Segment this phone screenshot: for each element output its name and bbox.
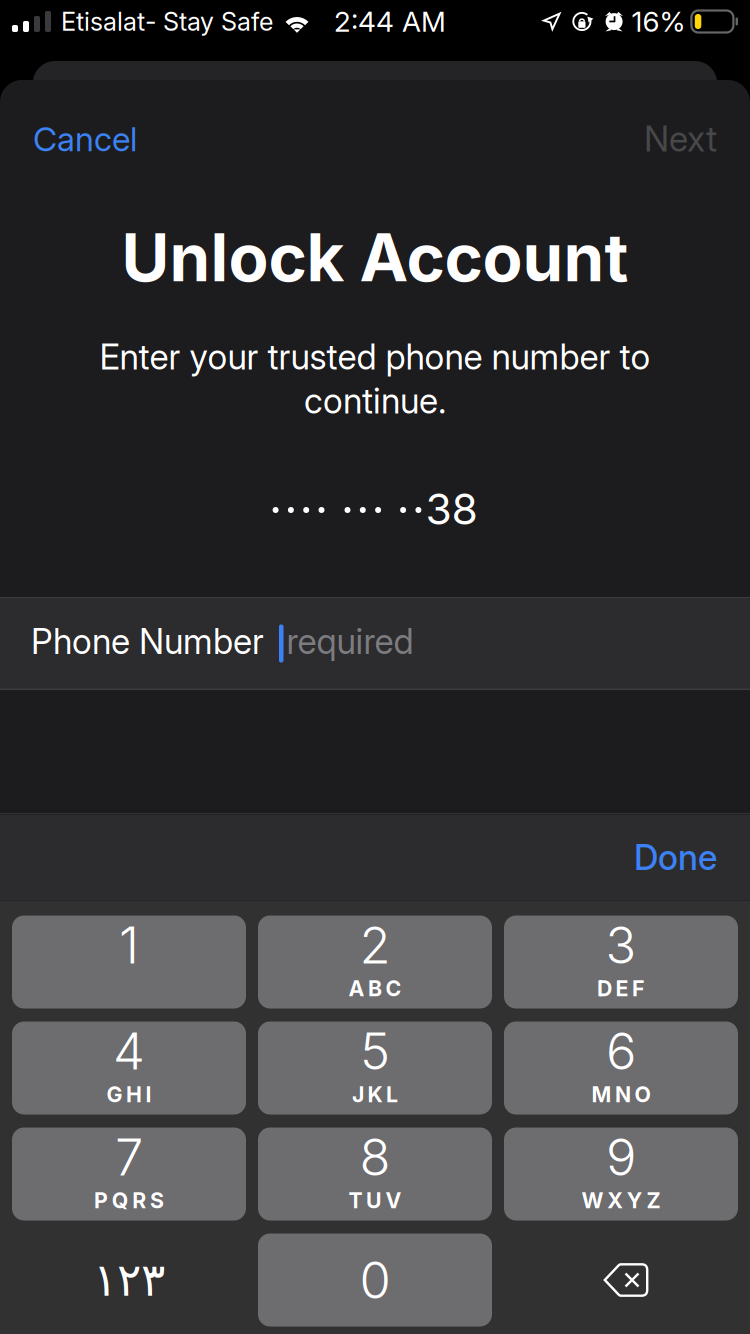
button[interactable]: 5 [258, 1021, 492, 1114]
staticText: 0 [359, 1249, 390, 1311]
staticText: 1 [119, 914, 139, 976]
staticText: GHI [106, 1081, 152, 1107]
button[interactable]: Delete [504, 1233, 738, 1326]
staticText: 2 [359, 914, 390, 976]
staticText: WXYZ [582, 1187, 660, 1213]
button[interactable]: 7 [12, 1127, 246, 1220]
staticText: PQRS [94, 1187, 164, 1213]
staticText: DEF [597, 975, 645, 1001]
button[interactable]: Done [634, 836, 717, 878]
staticText: 8 [359, 1126, 390, 1188]
button[interactable]: 9 [504, 1127, 738, 1220]
button[interactable]: Next [597, 104, 717, 174]
staticText: continue. [304, 380, 446, 422]
button[interactable]: 3 [504, 915, 738, 1008]
staticText: JKL [352, 1081, 398, 1107]
staticText: MNO [591, 1081, 651, 1107]
staticText: 16% [631, 5, 685, 38]
staticText: ABC [348, 975, 402, 1001]
staticText: Enter your trusted phone number to [99, 336, 650, 378]
button[interactable]: 2 [258, 915, 492, 1008]
button[interactable]: Switch to Arabic numerals [12, 1233, 246, 1326]
button[interactable]: 0 [258, 1233, 492, 1326]
button[interactable]: 8 [258, 1127, 492, 1220]
staticText: 6 [606, 1020, 636, 1082]
staticText: 3 [605, 914, 636, 976]
staticText: TUV [348, 1187, 402, 1213]
staticText: 2:44 AM [334, 5, 446, 38]
staticText: 7 [115, 1126, 143, 1188]
staticText: 4 [113, 1020, 145, 1082]
button[interactable]: Cancel [33, 104, 153, 174]
staticText: Unlock Account [121, 218, 628, 297]
button[interactable]: 6 [504, 1021, 738, 1114]
staticText: ١٢٣ [93, 1254, 165, 1306]
staticText: required [286, 620, 413, 662]
staticText: Done [634, 836, 717, 878]
staticText: Next [644, 118, 717, 160]
staticText: Cancel [33, 119, 137, 159]
staticText: Phone Number [31, 620, 264, 662]
staticText: 38 [425, 483, 477, 535]
button[interactable]: 1 [12, 915, 246, 1008]
button[interactable]: 4 [12, 1021, 246, 1114]
staticText: 9 [606, 1126, 636, 1188]
staticText: Etisalat- Stay Safe [61, 6, 273, 37]
staticText: 5 [360, 1020, 390, 1082]
